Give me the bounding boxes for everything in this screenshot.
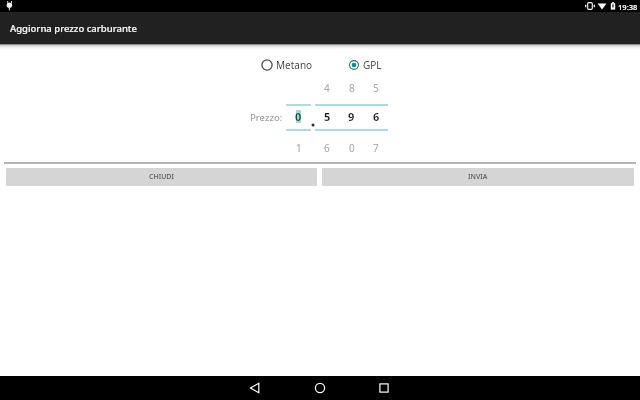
staticText: 1 xyxy=(296,141,302,155)
staticText: GPL xyxy=(363,58,382,72)
button[interactable]: 6 xyxy=(364,106,388,129)
staticText: 0 xyxy=(295,109,302,124)
button[interactable]: Decrement xyxy=(364,130,388,158)
staticText: 0 xyxy=(349,141,355,155)
button[interactable]: Increment xyxy=(339,78,364,104)
staticText: Prezzo: xyxy=(250,111,283,124)
staticText: 6 xyxy=(324,141,330,155)
button[interactable]: INVIA xyxy=(322,168,634,186)
button[interactable]: Home xyxy=(300,376,340,400)
staticText: Aggiorna prezzo carburante xyxy=(10,22,137,35)
staticText: 4 xyxy=(324,81,330,95)
button[interactable]: Decrement xyxy=(339,130,364,158)
staticText: 8 xyxy=(349,81,355,95)
button[interactable]: 5 xyxy=(315,106,339,129)
staticText: 9 xyxy=(348,109,355,124)
button[interactable]: GPL xyxy=(347,57,382,72)
button[interactable]: CHIUDI xyxy=(6,168,317,186)
staticText: CHIUDI xyxy=(149,172,174,182)
button[interactable]: Metano xyxy=(260,57,313,72)
staticText: 6 xyxy=(373,109,380,124)
staticText: 5 xyxy=(373,81,379,95)
staticText: 5 xyxy=(324,109,331,124)
button[interactable]: Recent apps xyxy=(364,376,404,400)
button[interactable]: Decrement xyxy=(315,130,339,158)
staticText: INVIA xyxy=(468,172,488,182)
button[interactable]: Decrement xyxy=(286,130,311,158)
staticText: Metano xyxy=(276,58,313,72)
button[interactable]: Back xyxy=(235,376,275,400)
button[interactable]: Increment xyxy=(315,78,339,104)
button[interactable]: Increment xyxy=(364,78,388,104)
button[interactable]: 9 xyxy=(339,106,364,129)
button[interactable]: 0 xyxy=(286,106,311,129)
staticText: 19:38 xyxy=(618,2,638,12)
staticText: 7 xyxy=(373,141,379,155)
